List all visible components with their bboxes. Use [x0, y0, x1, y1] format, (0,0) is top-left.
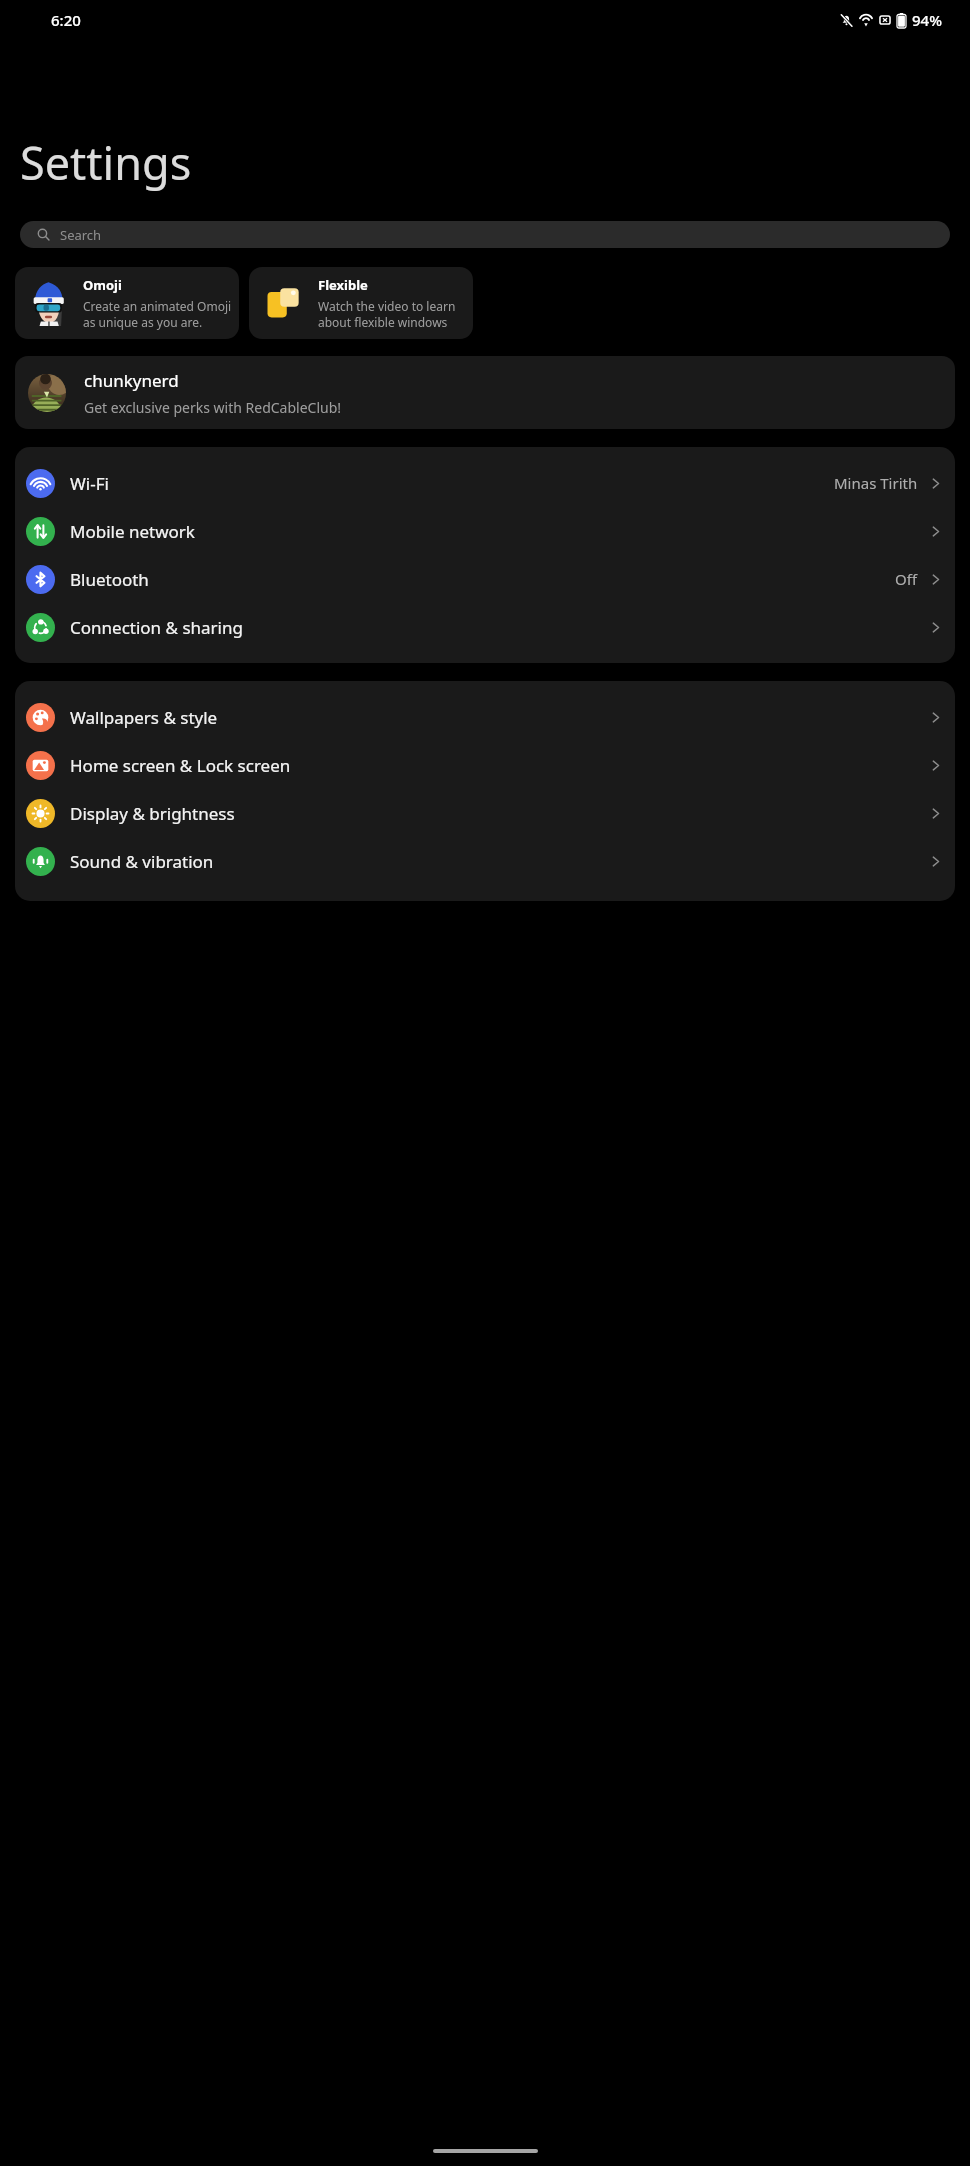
staticText: Search — [60, 226, 102, 244]
button[interactable]: Sound & vibration — [15, 837, 955, 885]
staticText: Flexible — [318, 276, 368, 294]
other: Open Wi-Fi — [930, 478, 941, 489]
staticText: Display & brightness — [70, 802, 235, 825]
staticText: Connection & sharing — [70, 616, 243, 639]
staticText: 94% — [912, 10, 942, 30]
button[interactable]: Search — [20, 221, 950, 248]
staticText: 6:20 — [51, 10, 81, 30]
staticText: Bluetooth — [70, 568, 149, 591]
staticText: Omoji — [83, 276, 122, 294]
staticText: Get exclusive perks with RedCableClub! — [84, 398, 342, 417]
staticText: Wallpapers & style — [70, 706, 218, 729]
staticText: Mobile network — [70, 520, 195, 543]
button[interactable]: Home screen & Lock screen — [15, 741, 955, 789]
other: Open Connection & sharing — [930, 622, 941, 633]
button[interactable]: Wi-Fi — [15, 459, 955, 507]
staticText: Sound & vibration — [70, 850, 214, 873]
staticText: Wi-Fi — [70, 472, 109, 495]
other: Open Wallpapers & style — [930, 712, 941, 723]
staticText: Settings — [20, 132, 192, 193]
other: Open Sound & vibration — [930, 856, 941, 867]
button[interactable]: Connection & sharing — [15, 603, 955, 651]
staticText: Home screen & Lock screen — [70, 754, 291, 777]
button[interactable]: Flexible — [249, 267, 473, 339]
button[interactable]: Bluetooth — [15, 555, 955, 603]
button[interactable]: Wallpapers & style — [15, 693, 955, 741]
other: Open Bluetooth — [930, 574, 941, 585]
button[interactable]: chunkynerd — [15, 356, 955, 429]
other: Open Mobile network — [930, 526, 941, 537]
staticText: Watch the video to learn about flexible … — [318, 298, 473, 331]
other: Open Display & brightness — [930, 808, 941, 819]
button[interactable]: Mobile network — [15, 507, 955, 555]
staticText: Create an animated Omoji as unique as yo… — [83, 298, 233, 331]
other: Open Home screen & Lock screen — [930, 760, 941, 771]
staticText: Off — [895, 569, 918, 589]
button[interactable]: Display & brightness — [15, 789, 955, 837]
staticText: chunkynerd — [84, 369, 179, 392]
button[interactable]: Omoji — [15, 267, 239, 339]
staticText: Minas Tirith — [834, 473, 918, 493]
